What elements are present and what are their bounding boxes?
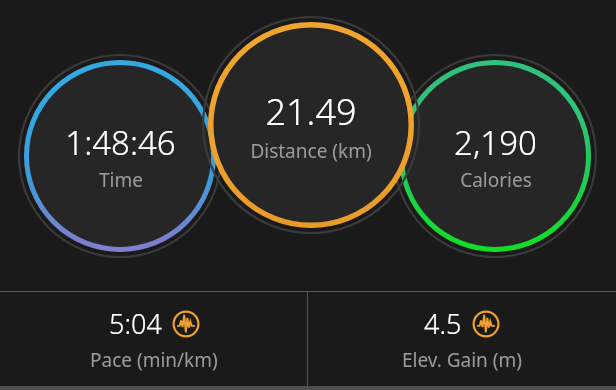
staticText: 1:48:46 xyxy=(65,120,176,165)
staticText: Distance (km) xyxy=(250,138,372,164)
staticText: Pace (min/km) xyxy=(90,347,218,373)
button[interactable]: 4.5 xyxy=(308,292,616,386)
button[interactable]: Distance 21.49 km xyxy=(200,14,422,236)
staticText: Time xyxy=(99,167,143,193)
staticText: 2,190 xyxy=(454,120,537,165)
staticText: Elev. Gain (m) xyxy=(402,347,522,373)
staticText: 21.49 xyxy=(265,87,357,136)
staticText: Calories xyxy=(460,167,532,193)
button[interactable]: 5:04 xyxy=(0,292,307,386)
button[interactable]: Calories 2,190 xyxy=(391,52,599,260)
staticText: 5:04 xyxy=(109,305,162,342)
button[interactable]: Time 1:48:46 xyxy=(16,52,224,260)
staticText: 4.5 xyxy=(424,305,462,342)
